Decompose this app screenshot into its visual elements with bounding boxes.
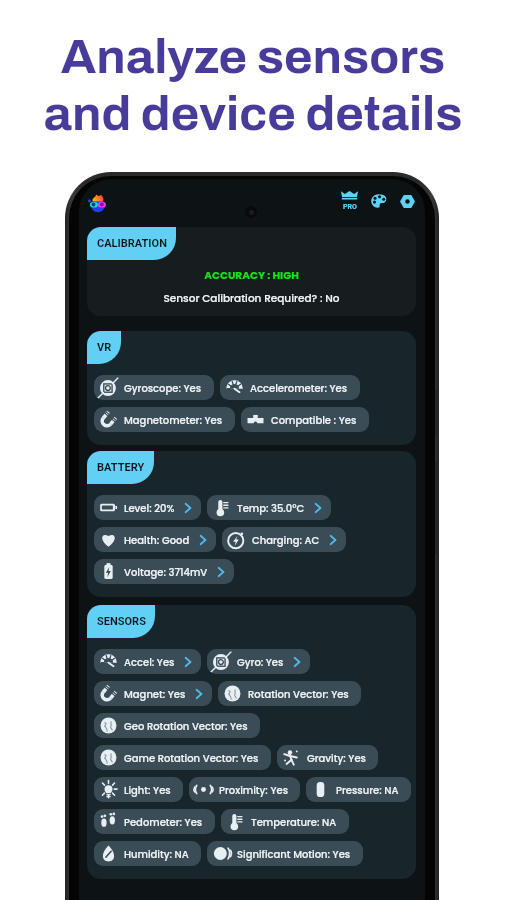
button[interactable]: Settings [395,189,419,213]
button[interactable]: Accelerometer: Yes [220,375,360,400]
staticText: Rotation Vector: Yes [248,687,349,701]
button[interactable]: App logo [86,193,109,216]
button[interactable]: Gravity: Yes [277,745,378,770]
staticText: Gravity: Yes [307,751,366,765]
staticText: Charging: AC [252,533,320,547]
staticText: SENSORS [97,615,146,628]
button[interactable]: Significant Motion: Yes [207,841,363,866]
button[interactable]: Game Rotation Vector: Yes [94,745,271,770]
button[interactable]: Pressure: NA [306,777,411,802]
button[interactable]: Charging: AC [222,527,346,552]
staticText: Game Rotation Vector: Yes [124,751,259,765]
button[interactable]: Rotation Vector: Yes [218,681,361,706]
button[interactable]: Health: Good [94,527,216,552]
button[interactable]: Gyro: Yes [207,649,310,674]
button[interactable]: Geo Rotation Vector: Yes [94,713,260,738]
button[interactable]: Change theme [367,189,391,213]
staticText: Compatible : Yes [271,413,357,427]
staticText: Accelerometer: Yes [250,381,348,395]
staticText: Significant Motion: Yes [237,847,351,861]
staticText: BATTERY [97,461,145,474]
button[interactable]: Magnet: Yes [94,681,212,706]
button[interactable]: Pedometer: Yes [94,809,215,834]
staticText: Level: 20% [124,501,175,515]
button[interactable]: Temperature: NA [221,809,349,834]
staticText: Pressure: NA [336,783,399,797]
staticText: Sensor Calibration Required? : No [87,291,416,306]
button[interactable]: Gyroscope: Yes [94,375,214,400]
staticText: Pedometer: Yes [124,815,203,829]
button[interactable]: Accel: Yes [94,649,201,674]
staticText: Analyze sensors and device details [0,30,506,140]
staticText: Geo Rotation Vector: Yes [124,719,248,733]
staticText: Humidity: NA [124,847,189,861]
staticText: VR [97,341,112,354]
button[interactable]: Light: Yes [94,777,183,802]
button[interactable]: Upgrade to Pro [337,189,361,213]
staticText: Temp: 35.0°C [237,501,305,515]
staticText: Health: Good [124,533,190,547]
staticText: Voltage: 3714mV [124,565,208,579]
button[interactable]: Compatible : Yes [241,407,369,432]
staticText: Accel: Yes [124,655,175,669]
staticText: Proximity: Yes [219,783,288,797]
button[interactable]: Temp: 35.0°C [207,495,331,520]
button[interactable]: Level: 20% [94,495,201,520]
button[interactable]: Proximity: Yes [189,777,300,802]
staticText: ACCURACY : HIGH [87,268,416,283]
staticText: CALIBRATION [97,237,167,250]
staticText: Gyroscope: Yes [124,381,202,395]
button[interactable]: Voltage: 3714mV [94,559,234,584]
staticText: Magnetometer: Yes [124,413,223,427]
staticText: PRO [343,203,357,211]
staticText: Temperature: NA [251,815,337,829]
staticText: Gyro: Yes [237,655,284,669]
button[interactable]: Humidity: NA [94,841,201,866]
button[interactable]: Magnetometer: Yes [94,407,235,432]
staticText: Magnet: Yes [124,687,186,701]
staticText: Light: Yes [124,783,171,797]
